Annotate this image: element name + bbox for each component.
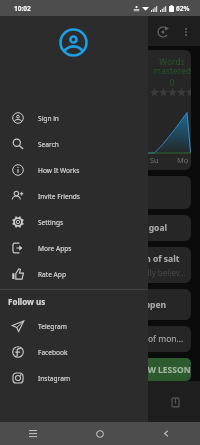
button[interactable]: Complete your goal [9, 215, 191, 241]
button[interactable]: Home [66, 422, 133, 445]
button[interactable]: Invite Friends [0, 183, 148, 209]
staticText: Invite Friends [38, 192, 81, 201]
staticText: Sign in [38, 114, 59, 123]
button[interactable]: Facebook [0, 339, 148, 365]
button[interactable]: Recent apps [0, 422, 66, 445]
button[interactable]: Dictionary [167, 394, 183, 410]
staticText: Take with a pinch of salt [77, 253, 180, 265]
button[interactable] [9, 176, 191, 209]
staticText: Su [150, 155, 159, 165]
staticText: I can hardly believ… [112, 267, 186, 278]
button[interactable]: Sync [155, 24, 170, 39]
button[interactable]: Spend a lot of mon… [9, 326, 191, 352]
button[interactable]: Settings [0, 209, 148, 235]
staticText: Follow us [8, 296, 46, 307]
staticText: Mo [177, 155, 189, 165]
button[interactable]: Sign in [0, 105, 148, 131]
staticText: Facebook [38, 348, 68, 357]
button[interactable]: Search [0, 131, 148, 157]
button[interactable]: Rate App [0, 261, 148, 287]
button[interactable]: Telegram [0, 313, 148, 339]
staticText: Search [38, 140, 59, 149]
staticText: Complete your goal [84, 222, 168, 234]
button[interactable]: Back [133, 422, 200, 445]
staticText: Instagram [38, 374, 71, 383]
button[interactable]: Make it happen [9, 289, 191, 320]
button[interactable]: Instagram [0, 365, 148, 391]
staticText: Telegram [38, 322, 67, 331]
staticText: More Apps [38, 244, 72, 253]
staticText: Make it happen [100, 299, 167, 311]
staticText: NEW LESSON [136, 364, 191, 376]
staticText: How It Works [38, 166, 80, 175]
button[interactable]: Take with a pinch of salt [9, 247, 191, 283]
staticText: 10:02 [14, 4, 31, 13]
button[interactable]: More options [178, 24, 193, 39]
staticText: 62% [176, 4, 190, 13]
staticText: Settings [38, 218, 64, 227]
staticText: 0 [150, 77, 191, 89]
button[interactable]: How It Works [0, 157, 148, 183]
staticText: Rate App [38, 270, 66, 279]
staticText: Words mastered [150, 56, 191, 77]
button[interactable]: More Apps [0, 235, 148, 261]
button[interactable]: REVIEW [9, 358, 129, 381]
staticText: Spend a lot of mon… [101, 333, 184, 345]
button[interactable]: NEW LESSON [135, 358, 191, 381]
